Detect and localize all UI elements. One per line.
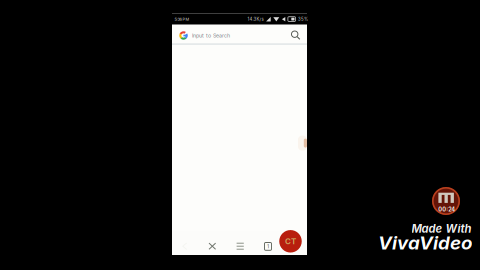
- button[interactable]: Menu: [227, 234, 253, 258]
- button[interactable]: Back: [172, 234, 198, 258]
- staticText: 00:24: [438, 206, 455, 213]
- staticText: 1: [267, 243, 269, 250]
- button[interactable]: Tabs: [255, 234, 281, 258]
- staticText: 14.3K/s: [247, 17, 263, 22]
- staticText: Input to Search: [192, 32, 230, 39]
- button[interactable]: Account: [277, 229, 303, 253]
- button[interactable]: Stop loading: [199, 234, 225, 258]
- staticText: CT: [285, 236, 296, 246]
- staticText: VivaVideo: [378, 231, 472, 254]
- button[interactable]: Input to Search: [172, 25, 307, 44]
- staticText: Made With: [411, 222, 471, 236]
- staticText: 35%: [298, 17, 308, 22]
- staticText: 5:36 PM: [174, 17, 189, 22]
